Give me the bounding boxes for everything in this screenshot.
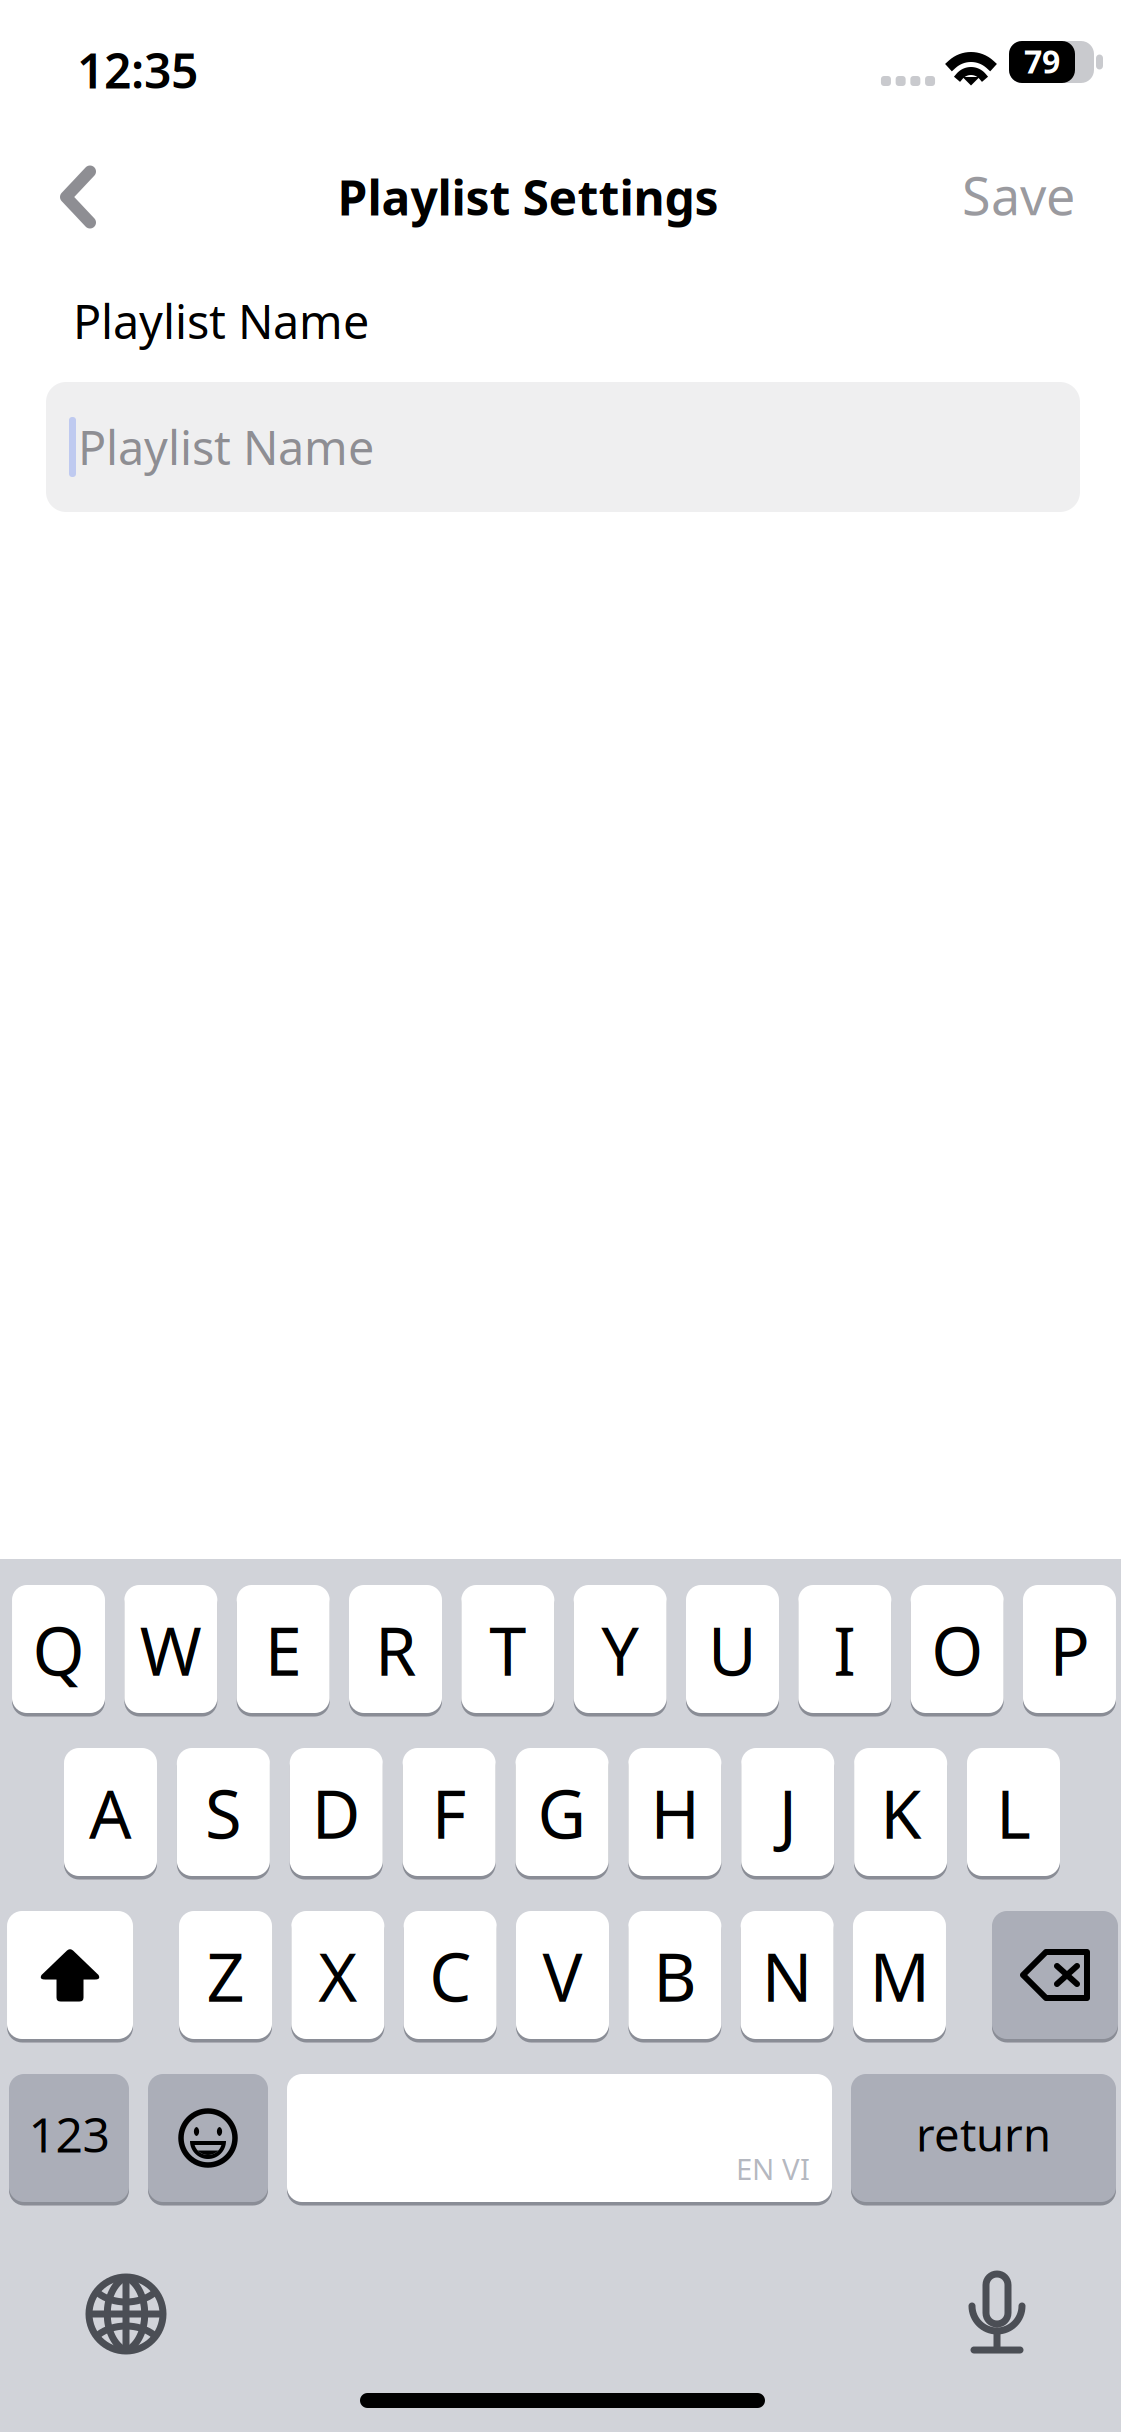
button[interactable]: 123 bbox=[9, 2074, 129, 2202]
staticText: G bbox=[537, 1769, 586, 1857]
button[interactable]: Q bbox=[12, 1585, 105, 1713]
staticText: P bbox=[1049, 1606, 1089, 1694]
staticText: Playlist Name bbox=[73, 290, 369, 352]
staticText: E bbox=[265, 1606, 302, 1694]
staticText: R bbox=[375, 1606, 416, 1694]
button[interactable]: Delete bbox=[992, 1911, 1118, 2039]
button[interactable]: H bbox=[628, 1748, 721, 1876]
staticText: A bbox=[89, 1769, 132, 1857]
staticText: Q bbox=[32, 1606, 84, 1694]
button[interactable]: M bbox=[853, 1911, 946, 2039]
button[interactable]: Save bbox=[895, 165, 1075, 225]
staticText: F bbox=[432, 1769, 467, 1857]
button[interactable]: S bbox=[177, 1748, 270, 1876]
staticText: 79 bbox=[1024, 40, 1060, 82]
staticText: 12:35 bbox=[77, 38, 198, 102]
staticText: V bbox=[542, 1932, 582, 2020]
staticText: X bbox=[318, 1932, 357, 2020]
staticText: B bbox=[653, 1932, 696, 2020]
staticText: L bbox=[996, 1769, 1031, 1857]
staticText: Playlist Name bbox=[78, 416, 374, 478]
button[interactable]: G bbox=[515, 1748, 608, 1876]
button[interactable]: V bbox=[516, 1911, 609, 2039]
staticText: I bbox=[833, 1606, 856, 1694]
button[interactable]: Z bbox=[179, 1911, 272, 2039]
button[interactable]: C bbox=[404, 1911, 497, 2039]
staticText: M bbox=[869, 1932, 929, 2020]
staticText: Save bbox=[962, 160, 1075, 230]
staticText: 123 bbox=[28, 2102, 109, 2166]
staticText: N bbox=[762, 1932, 813, 2020]
staticText: J bbox=[779, 1769, 797, 1857]
button[interactable]: return bbox=[851, 2074, 1116, 2202]
button[interactable]: R bbox=[349, 1585, 442, 1713]
button[interactable]: Dictation bbox=[959, 2268, 1035, 2356]
staticText: W bbox=[140, 1606, 202, 1694]
staticText: EN VI bbox=[736, 2149, 810, 2188]
staticText: O bbox=[931, 1606, 983, 1694]
button[interactable]: Playlist Name bbox=[46, 382, 1080, 512]
button[interactable]: E bbox=[237, 1585, 330, 1713]
button[interactable]: J bbox=[741, 1748, 834, 1876]
button[interactable]: Emoji bbox=[148, 2074, 268, 2202]
staticText: U bbox=[708, 1606, 757, 1694]
button[interactable]: F bbox=[403, 1748, 496, 1876]
button[interactable]: O bbox=[911, 1585, 1004, 1713]
staticText: H bbox=[650, 1769, 699, 1857]
staticText: S bbox=[205, 1769, 242, 1857]
button[interactable]: L bbox=[967, 1748, 1060, 1876]
button[interactable]: W bbox=[124, 1585, 217, 1713]
button[interactable]: N bbox=[741, 1911, 834, 2039]
button[interactable]: B bbox=[628, 1911, 721, 2039]
staticText: K bbox=[880, 1769, 921, 1857]
staticText: C bbox=[429, 1932, 471, 2020]
button[interactable]: U bbox=[686, 1585, 779, 1713]
staticText: Playlist Settings bbox=[337, 165, 718, 229]
staticText: Y bbox=[601, 1606, 639, 1694]
button[interactable]: T bbox=[461, 1585, 554, 1713]
button[interactable]: Next keyboard bbox=[85, 2273, 167, 2355]
button[interactable]: Y bbox=[574, 1585, 667, 1713]
button[interactable]: X bbox=[291, 1911, 384, 2039]
button[interactable]: K bbox=[854, 1748, 947, 1876]
button[interactable]: P bbox=[1023, 1585, 1116, 1713]
button[interactable]: Space bbox=[287, 2074, 832, 2202]
button[interactable]: A bbox=[64, 1748, 157, 1876]
button[interactable]: D bbox=[290, 1748, 383, 1876]
staticText: Z bbox=[206, 1932, 244, 2020]
staticText: D bbox=[312, 1769, 361, 1857]
staticText: T bbox=[489, 1606, 526, 1694]
staticText: return bbox=[916, 2104, 1051, 2164]
button[interactable]: Shift bbox=[7, 1911, 133, 2039]
button[interactable]: Back bbox=[24, 156, 132, 238]
button[interactable]: I bbox=[798, 1585, 891, 1713]
